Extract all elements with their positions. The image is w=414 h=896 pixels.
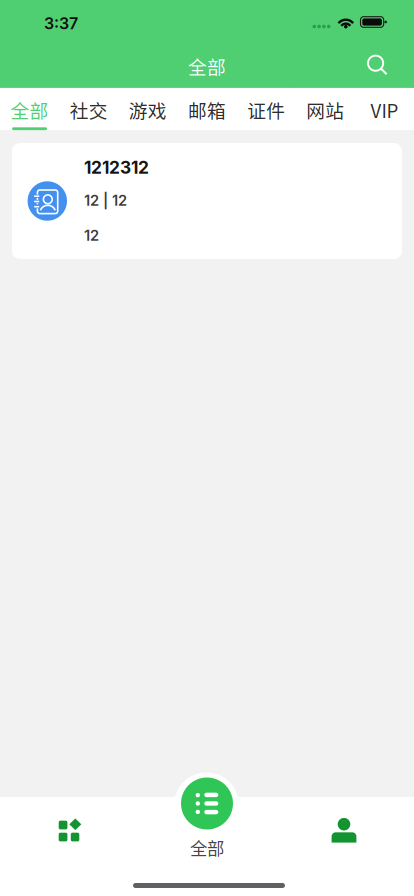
staticText: 12: [84, 227, 99, 244]
staticText: 全部: [11, 96, 49, 123]
button[interactable]: 1212312: [12, 143, 402, 259]
staticText: 邮箱: [188, 96, 226, 123]
button[interactable]: 网站: [296, 88, 355, 130]
button[interactable]: 全部: [157, 770, 257, 896]
staticText: 全部: [188, 52, 226, 79]
button[interactable]: 游戏: [118, 88, 177, 130]
staticText: 网站: [306, 96, 344, 123]
staticText: 证件: [247, 96, 285, 123]
button[interactable]: 全部: [0, 88, 59, 130]
button[interactable]: Search: [356, 44, 400, 88]
button[interactable]: 社交: [59, 88, 118, 130]
staticText: 12 | 12: [84, 192, 127, 209]
staticText: 社交: [70, 96, 108, 123]
button[interactable]: 证件: [237, 88, 296, 130]
button[interactable]: Profile: [274, 770, 414, 896]
staticText: 1212312: [84, 157, 149, 178]
button[interactable]: Categories: [0, 770, 140, 896]
staticText: VIP: [370, 96, 398, 123]
button[interactable]: VIP: [355, 88, 414, 130]
staticText: 全部: [190, 835, 224, 860]
staticText: 游戏: [129, 96, 167, 123]
button[interactable]: 邮箱: [177, 88, 236, 130]
staticText: 3:37: [44, 14, 78, 33]
